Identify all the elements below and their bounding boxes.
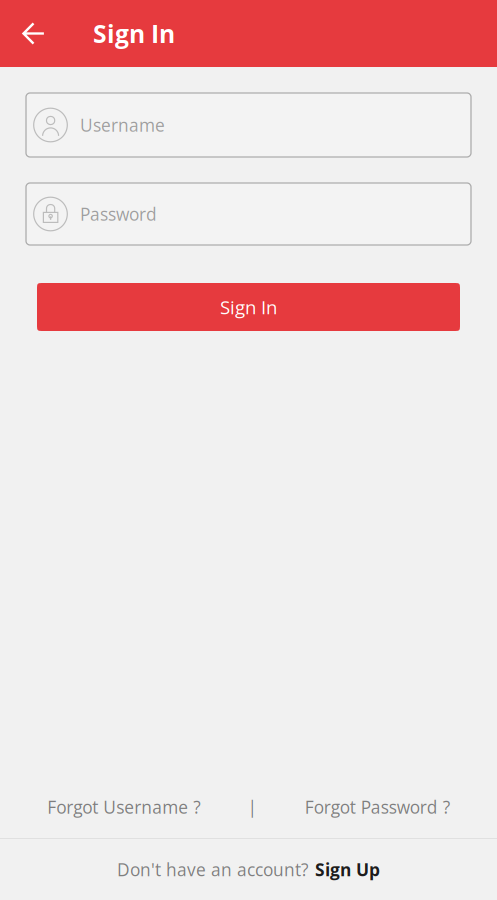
staticText: Password — [80, 202, 157, 226]
button[interactable]: Forgot Username ? — [47, 792, 200, 822]
staticText: Sign Up — [315, 858, 380, 881]
staticText: Don't have an account? — [117, 858, 308, 881]
button[interactable]: Password — [26, 183, 471, 245]
staticText: | — [247, 795, 257, 819]
staticText: Username — [80, 113, 165, 137]
button[interactable]: Forgot Password ? — [305, 792, 450, 822]
staticText: Forgot Password ? — [305, 795, 450, 819]
button[interactable]: Back — [0, 0, 67, 67]
staticText: Sign In — [220, 294, 277, 320]
button[interactable]: Sign Up — [315, 858, 380, 881]
staticText: Forgot Username ? — [47, 795, 200, 819]
button[interactable]: Username — [26, 93, 471, 157]
staticText: Sign In — [93, 17, 175, 50]
button[interactable]: Sign In — [37, 283, 460, 331]
